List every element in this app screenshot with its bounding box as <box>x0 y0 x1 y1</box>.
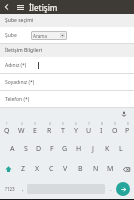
button[interactable]: M <box>103 160 118 178</box>
button[interactable]: N <box>88 160 103 178</box>
staticText: ?123 <box>5 186 15 192</box>
button[interactable]: D <box>32 140 45 158</box>
staticText: 8 <box>101 122 103 126</box>
button[interactable]: Arama <box>31 31 67 40</box>
staticText: 3 <box>34 122 36 126</box>
staticText: P <box>125 126 130 136</box>
button[interactable]: Shift <box>0 159 16 179</box>
staticText: L <box>119 144 123 154</box>
button[interactable]: B <box>73 160 88 178</box>
staticText: 0 <box>127 122 129 126</box>
button[interactable]: 5 <box>56 120 69 138</box>
staticText: 7 <box>88 122 90 126</box>
staticText: Şube <box>5 32 17 39</box>
staticText: I <box>100 126 103 136</box>
button[interactable]: L <box>114 140 128 158</box>
button[interactable]: K <box>100 140 114 158</box>
staticText: 1 <box>6 122 8 126</box>
staticText: D <box>36 144 42 154</box>
staticText: K <box>105 144 110 154</box>
button[interactable]: Voice input <box>119 109 128 118</box>
staticText: W <box>18 126 25 136</box>
staticText: 4 <box>49 122 51 126</box>
staticText: İletişim Bilgileri <box>5 47 43 54</box>
staticText: Adınız (*) <box>5 62 27 69</box>
button[interactable]: C <box>44 160 58 178</box>
staticText: A <box>10 144 15 154</box>
button[interactable]: 2 <box>14 120 28 138</box>
staticText: M <box>107 164 114 174</box>
button[interactable]: V <box>58 160 73 178</box>
staticText: E <box>33 126 37 136</box>
staticText: 9 <box>114 122 116 126</box>
staticText: Q <box>4 126 10 136</box>
staticText: . <box>110 185 112 193</box>
staticText: N <box>93 164 99 174</box>
button[interactable]: Z <box>16 160 30 178</box>
button[interactable]: S <box>19 140 32 158</box>
staticText: F <box>50 144 54 154</box>
staticText: Telefon (*) <box>5 96 30 103</box>
button[interactable]: Telefon (*) <box>0 91 134 108</box>
button[interactable]: . <box>105 179 116 199</box>
staticText: V <box>63 164 68 174</box>
button[interactable]: , <box>18 179 27 199</box>
button[interactable]: Menu <box>13 0 27 14</box>
staticText: Z <box>21 164 26 174</box>
staticText: 2 <box>21 122 23 126</box>
staticText: İletişim <box>29 2 58 13</box>
button[interactable]: 1 <box>0 120 14 138</box>
button[interactable]: Back <box>1 1 13 13</box>
button[interactable]: 9 <box>108 120 121 138</box>
staticText: Soyadınız (*) <box>5 79 35 86</box>
button[interactable]: 3 <box>28 120 42 138</box>
button[interactable]: Adınız (*) <box>0 57 134 74</box>
staticText: J <box>92 144 94 154</box>
button[interactable]: 8 <box>95 120 108 138</box>
button[interactable]: H <box>72 140 86 158</box>
staticText: Şube seçimi <box>5 17 34 24</box>
button[interactable]: G <box>58 140 72 158</box>
button[interactable]: 6 <box>69 120 82 138</box>
staticText: S <box>24 144 28 154</box>
staticText: H <box>76 144 82 154</box>
button[interactable]: A <box>6 140 19 158</box>
button[interactable]: Enter <box>116 182 130 196</box>
staticText: C <box>49 164 54 174</box>
staticText: X <box>35 164 40 174</box>
staticText: O <box>112 126 118 136</box>
staticText: Arama <box>33 33 47 39</box>
staticText: , <box>22 185 24 193</box>
staticText: R <box>47 126 52 136</box>
staticText: 6 <box>75 122 77 126</box>
staticText: G <box>62 144 68 154</box>
staticText: T <box>61 126 65 136</box>
button[interactable]: F <box>45 140 58 158</box>
button[interactable]: X <box>30 160 44 178</box>
staticText: U <box>86 126 92 136</box>
staticText: 5 <box>62 122 64 126</box>
button[interactable]: 4 <box>42 120 56 138</box>
button[interactable]: J <box>86 140 100 158</box>
staticText: Y <box>74 126 78 136</box>
button[interactable]: 0 <box>121 120 134 138</box>
button[interactable]: Soyadınız (*) <box>0 74 134 91</box>
button[interactable]: Backspace <box>118 159 134 179</box>
staticText: B <box>78 164 83 174</box>
button[interactable]: 7 <box>82 120 95 138</box>
button[interactable]: ?123 <box>2 179 18 199</box>
